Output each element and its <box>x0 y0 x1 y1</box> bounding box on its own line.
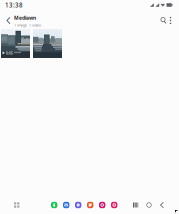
button[interactable]: All apps <box>11 199 22 211</box>
staticText: 13:38 <box>5 1 23 9</box>
staticText: 1 image 1 video <box>14 22 41 28</box>
staticText: Mediawn <box>14 14 36 21</box>
button[interactable]: Share via Keep <box>87 202 93 208</box>
button[interactable]: Share via app <box>75 202 81 208</box>
button[interactable]: Share via app <box>111 202 117 208</box>
button[interactable]: Recent apps <box>129 198 142 211</box>
button[interactable]: Share via app <box>99 202 105 208</box>
button[interactable]: Share via WhatsApp <box>51 202 57 208</box>
button[interactable]: Search <box>157 10 171 32</box>
button[interactable]: Back <box>1 10 15 32</box>
button[interactable]: Back <box>156 198 168 212</box>
button[interactable]: Home <box>142 198 156 212</box>
button[interactable]: Share via Email <box>63 202 69 208</box>
staticText: 0:05 <box>6 50 13 56</box>
button[interactable]: More options <box>165 10 176 32</box>
